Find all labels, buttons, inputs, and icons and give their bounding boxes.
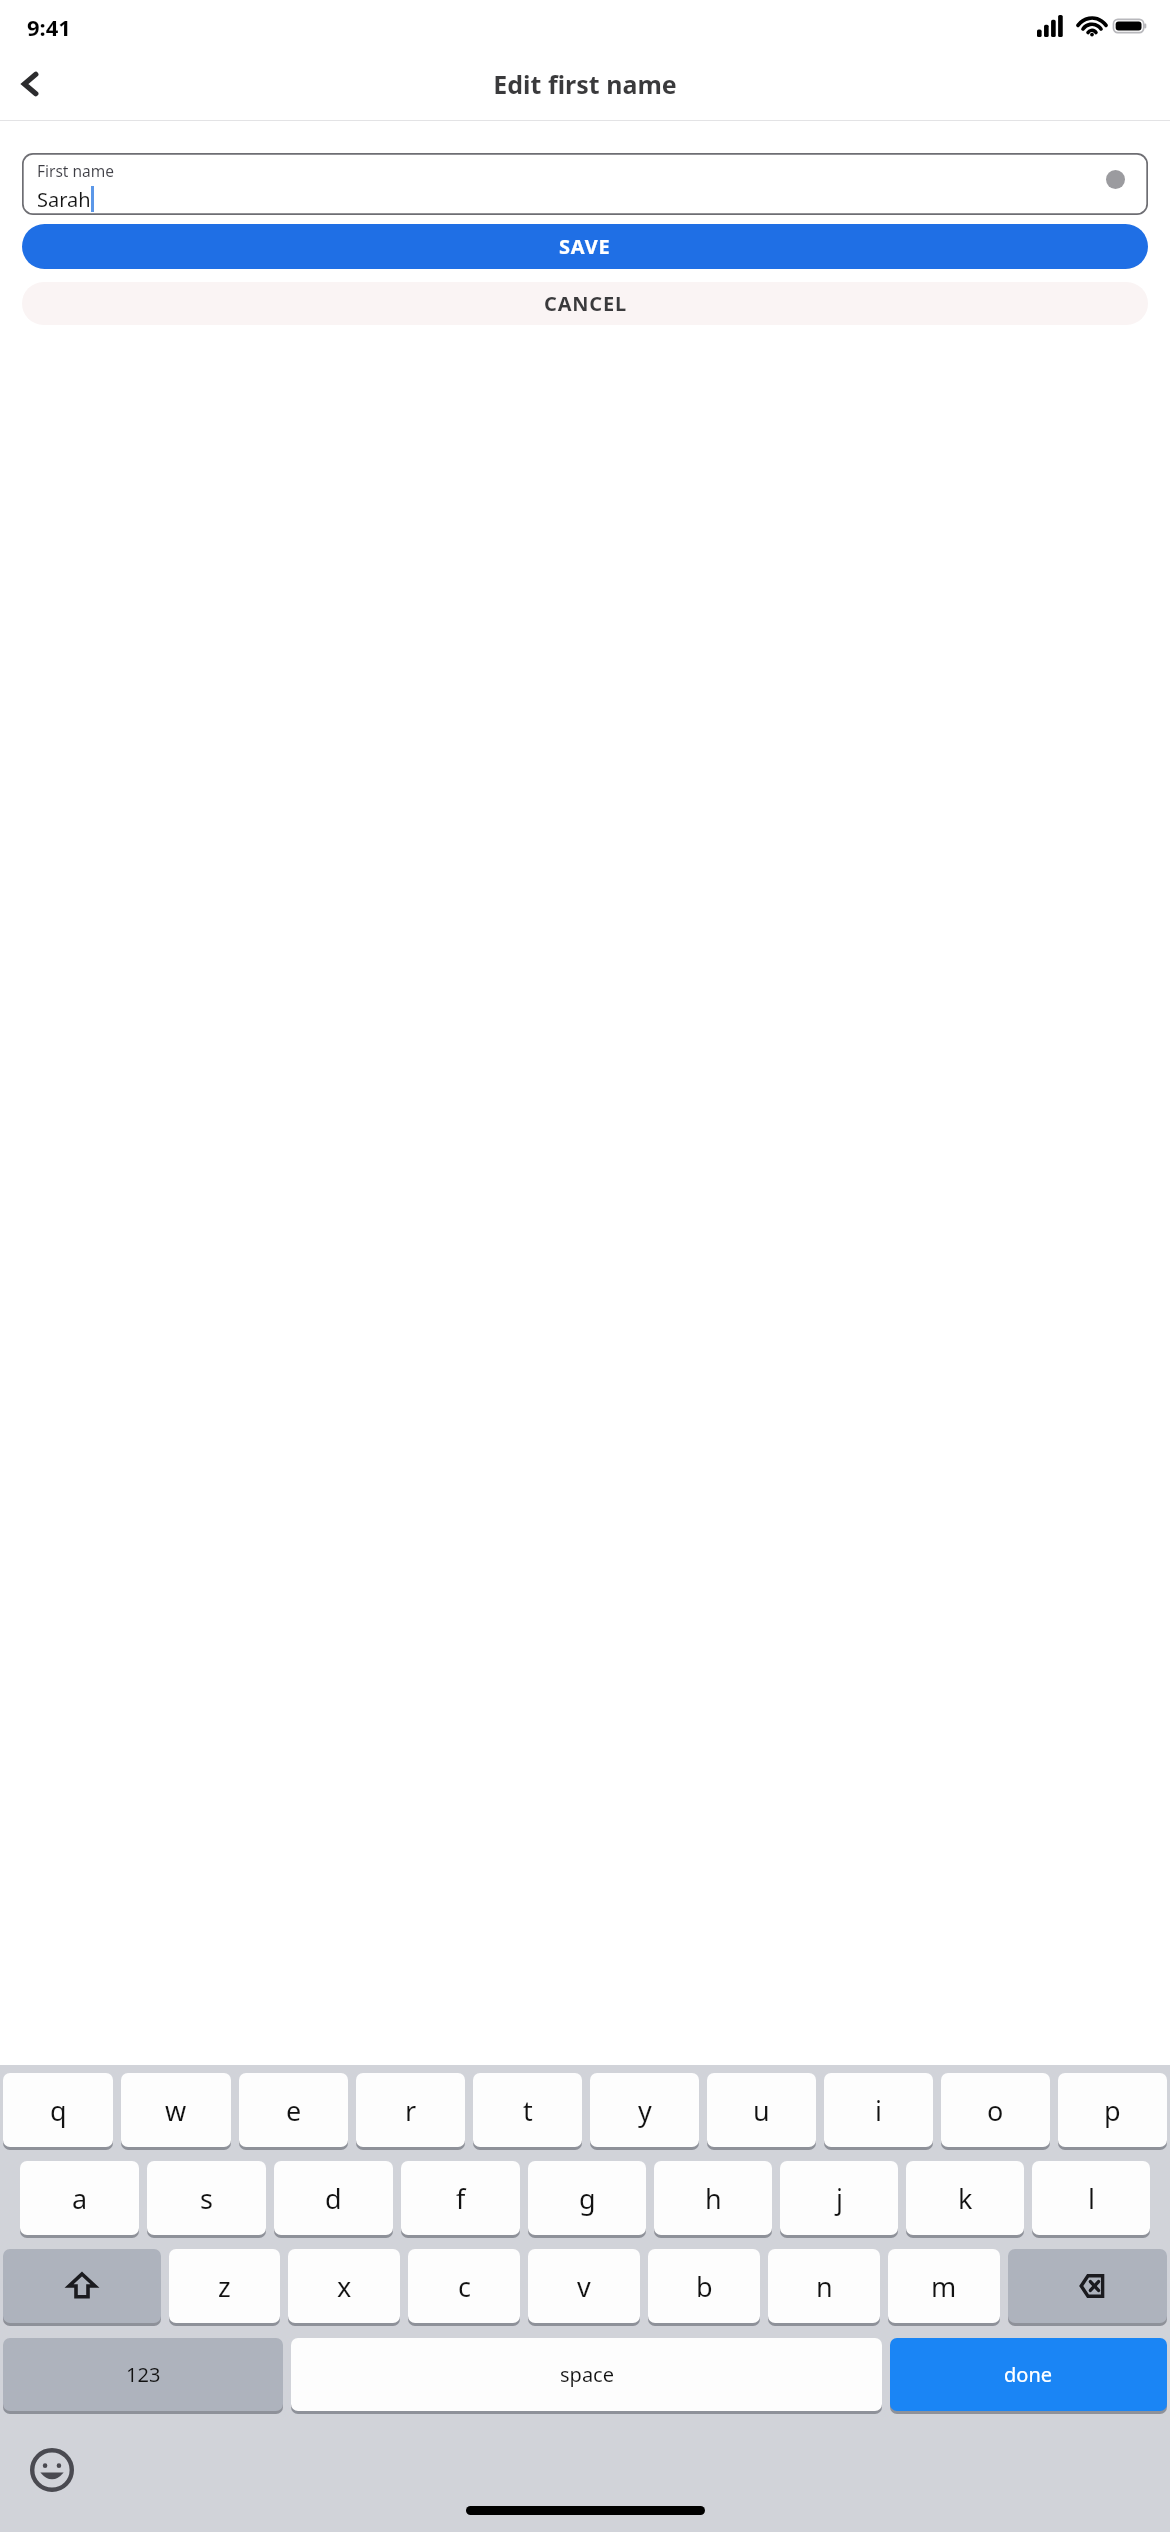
staticText: n [816, 2268, 833, 2305]
button[interactable]: i [824, 2073, 933, 2147]
button[interactable]: Clear [1106, 170, 1125, 189]
button[interactable]: q [3, 2073, 113, 2147]
staticText: 123 [126, 2361, 161, 2388]
staticText: CANCEL [544, 290, 627, 317]
staticText: i [875, 2092, 882, 2129]
button[interactable]: CANCEL [22, 282, 1148, 325]
button[interactable]: k [906, 2161, 1024, 2235]
button[interactable]: r [356, 2073, 465, 2147]
staticText: First name [37, 160, 115, 181]
staticText: s [200, 2180, 213, 2217]
button[interactable]: done [890, 2338, 1167, 2411]
staticText: v [577, 2268, 591, 2305]
button[interactable]: j [780, 2161, 898, 2235]
staticText: c [458, 2268, 471, 2305]
staticText: y [638, 2092, 652, 2129]
button[interactable]: c [408, 2249, 520, 2323]
staticText: z [218, 2268, 231, 2305]
button[interactable]: n [768, 2249, 880, 2323]
button[interactable]: x [288, 2249, 400, 2323]
staticText: l [1088, 2180, 1095, 2217]
staticText: d [325, 2180, 342, 2217]
button[interactable]: a [20, 2161, 139, 2235]
button[interactable]: w [121, 2073, 231, 2147]
button[interactable]: space [291, 2338, 882, 2411]
staticText: x [337, 2268, 352, 2305]
staticText: Sarah [37, 186, 91, 213]
staticText: f [456, 2180, 466, 2217]
button[interactable]: g [528, 2161, 646, 2235]
button[interactable]: l [1032, 2161, 1150, 2235]
button[interactable]: Backspace [1008, 2249, 1167, 2323]
staticText: p [1104, 2092, 1121, 2129]
button[interactable]: f [401, 2161, 520, 2235]
staticText: m [931, 2268, 957, 2305]
button[interactable]: y [590, 2073, 699, 2147]
staticText: r [405, 2092, 417, 2129]
button[interactable]: v [528, 2249, 640, 2323]
staticText: b [696, 2268, 713, 2305]
staticText: done [1004, 2361, 1053, 2388]
staticText: k [958, 2180, 973, 2217]
button[interactable]: Shift [3, 2249, 161, 2323]
button[interactable]: d [274, 2161, 393, 2235]
staticText: Edit first name [493, 67, 677, 101]
button[interactable]: t [473, 2073, 582, 2147]
button[interactable]: h [654, 2161, 772, 2235]
staticText: g [579, 2180, 596, 2217]
button[interactable]: z [169, 2249, 280, 2323]
staticText: u [753, 2092, 770, 2129]
button[interactable]: First name [22, 153, 1148, 215]
staticText: space [560, 2361, 614, 2388]
button[interactable]: p [1058, 2073, 1167, 2147]
button[interactable]: b [648, 2249, 760, 2323]
button[interactable]: m [888, 2249, 1000, 2323]
button[interactable]: u [707, 2073, 816, 2147]
button[interactable]: SAVE [22, 224, 1148, 269]
staticText: j [836, 2180, 843, 2217]
staticText: w [165, 2092, 187, 2129]
button[interactable]: o [941, 2073, 1050, 2147]
button[interactable]: Back [6, 59, 56, 109]
staticText: t [523, 2092, 533, 2129]
button[interactable]: e [239, 2073, 348, 2147]
staticText: q [50, 2092, 67, 2129]
staticText: o [987, 2092, 1004, 2129]
staticText: 9:41 [27, 12, 71, 42]
staticText: SAVE [559, 233, 611, 260]
button[interactable]: 123 [3, 2338, 283, 2411]
staticText: h [705, 2180, 722, 2217]
button[interactable]: s [147, 2161, 266, 2235]
staticText: e [286, 2092, 302, 2129]
button[interactable]: Emoji [26, 2444, 78, 2496]
staticText: a [72, 2180, 88, 2217]
